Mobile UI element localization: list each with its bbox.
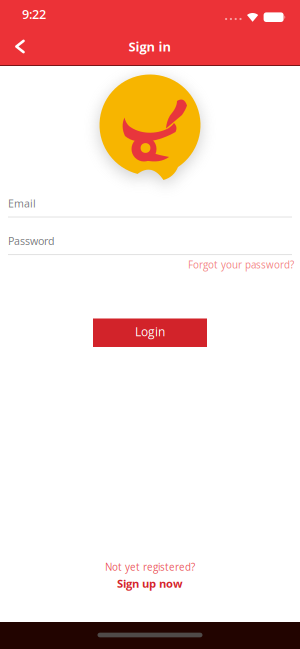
- button[interactable]: Back: [0, 28, 43, 64]
- button[interactable]: Forgot your password?: [188, 258, 294, 271]
- staticText: Email: [8, 196, 36, 210]
- button[interactable]: Login: [93, 318, 207, 347]
- staticText: Sign in: [128, 38, 171, 55]
- button[interactable]: Email: [0, 196, 300, 217]
- staticText: Password: [8, 233, 55, 248]
- staticText: Login: [135, 323, 165, 340]
- staticText: Forgot your password?: [188, 258, 294, 271]
- staticText: Not yet registered?: [105, 560, 195, 574]
- staticText: 9:22: [22, 5, 46, 23]
- button[interactable]: Password: [0, 233, 300, 255]
- button[interactable]: Not yet registered?: [105, 560, 195, 591]
- staticText: Sign up now: [117, 576, 183, 591]
